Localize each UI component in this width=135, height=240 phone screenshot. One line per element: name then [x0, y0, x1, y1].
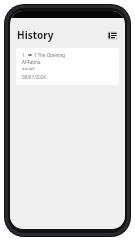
button[interactable]: 1. [16, 48, 119, 85]
staticText: 1. [22, 52, 26, 58]
staticText: Al-Fatiha [22, 59, 41, 65]
staticText: الفاتحة [22, 66, 35, 71]
button[interactable]: Clear history [106, 29, 119, 42]
staticText: 08/07/2024 [22, 74, 46, 80]
staticText: History [17, 28, 54, 42]
staticText: 1 The Opening [34, 52, 66, 58]
